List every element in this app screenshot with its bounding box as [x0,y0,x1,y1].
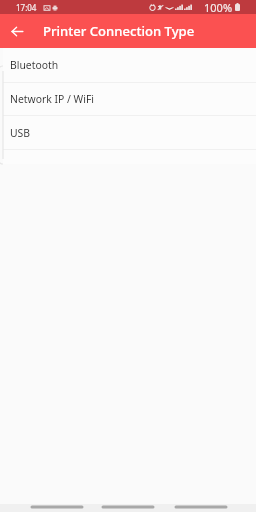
button[interactable]: Back [0,14,34,48]
staticText: Printer Connection Type [43,22,195,40]
button[interactable]: Recent apps [176,504,226,512]
staticText: Network IP / WiFi [10,92,94,106]
staticText: Bluetooth [10,58,59,72]
staticText: USB [10,126,31,140]
button[interactable]: Home [103,504,153,512]
button[interactable]: Back [32,504,82,512]
button[interactable]: USB [3,116,256,149]
staticText: 100% [204,0,233,14]
button[interactable]: Network IP / WiFi [3,83,256,115]
button[interactable]: Bluetooth [3,48,256,82]
staticText: 17:04 [16,2,37,13]
